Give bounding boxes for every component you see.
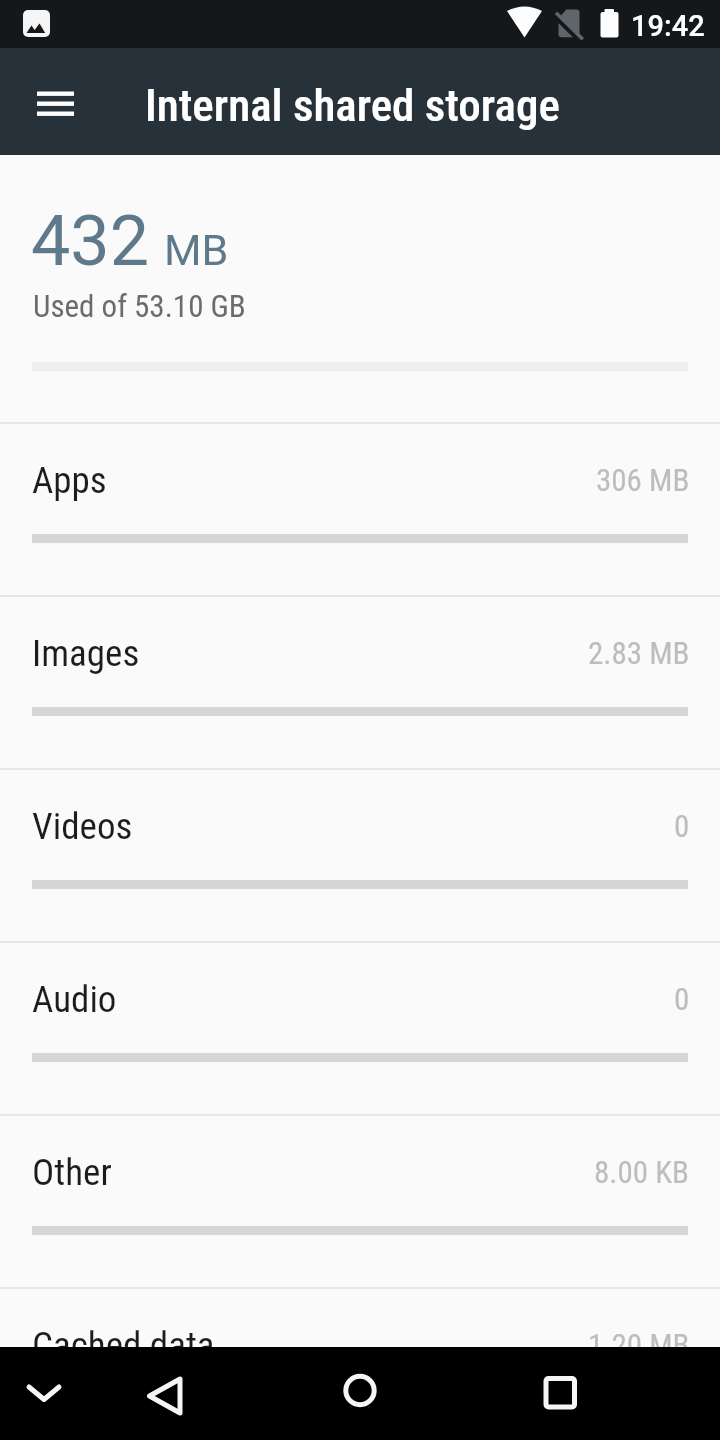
button[interactable] bbox=[0, 1347, 240, 1440]
button[interactable]: Apps bbox=[0, 422, 720, 595]
staticText: 8.00 KB bbox=[594, 1154, 690, 1190]
button[interactable]: Images bbox=[0, 595, 720, 768]
staticText: 1.20 MB bbox=[588, 1327, 690, 1363]
staticText: Images bbox=[32, 632, 140, 675]
staticText: 432 bbox=[31, 200, 150, 282]
staticText: 19:42 bbox=[631, 9, 705, 43]
button[interactable]: Audio bbox=[0, 941, 720, 1114]
staticText: 2.83 MB bbox=[588, 635, 690, 671]
staticText: Used of 53.10 GB bbox=[33, 288, 246, 324]
staticText: 0 bbox=[674, 808, 690, 844]
staticText: Cached data bbox=[32, 1324, 215, 1367]
button[interactable] bbox=[240, 1347, 480, 1440]
staticText: Internal shared storage bbox=[145, 79, 560, 132]
button[interactable] bbox=[24, 70, 88, 134]
button[interactable] bbox=[480, 1347, 720, 1440]
staticText: Audio bbox=[32, 978, 117, 1021]
staticText: 306 MB bbox=[596, 462, 690, 498]
staticText: MB bbox=[164, 225, 229, 275]
staticText: 0 bbox=[674, 981, 690, 1017]
staticText: Other bbox=[32, 1151, 112, 1194]
button[interactable]: Videos bbox=[0, 768, 720, 941]
staticText: Apps bbox=[32, 459, 107, 502]
button[interactable]: Other bbox=[0, 1114, 720, 1287]
staticText: Videos bbox=[32, 805, 133, 848]
button[interactable]: Cached data bbox=[0, 1287, 720, 1440]
